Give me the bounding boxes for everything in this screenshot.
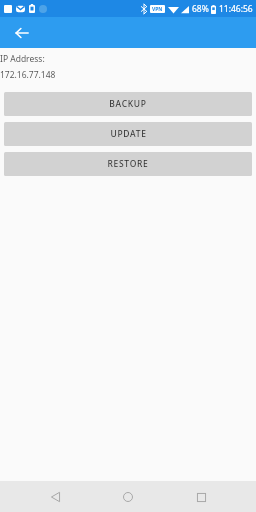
button[interactable]: RESTORE	[4, 152, 252, 176]
staticText: VPN	[152, 6, 163, 13]
staticText: RESTORE	[107, 158, 149, 170]
button[interactable]: Back	[37, 483, 73, 511]
staticText: 172.16.77.148	[0, 69, 56, 81]
button[interactable]: UPDATE	[4, 122, 252, 146]
button[interactable]: Home	[110, 483, 146, 511]
button[interactable]: BACKUP	[4, 92, 252, 116]
staticText: BACKUP	[109, 98, 147, 110]
button[interactable]: Back	[10, 21, 34, 45]
staticText: IP Address:	[0, 53, 45, 65]
button[interactable]: Recent apps	[183, 483, 219, 511]
staticText: UPDATE	[110, 128, 147, 140]
staticText: 68%	[192, 3, 209, 15]
staticText: 11:46:56	[219, 3, 253, 15]
